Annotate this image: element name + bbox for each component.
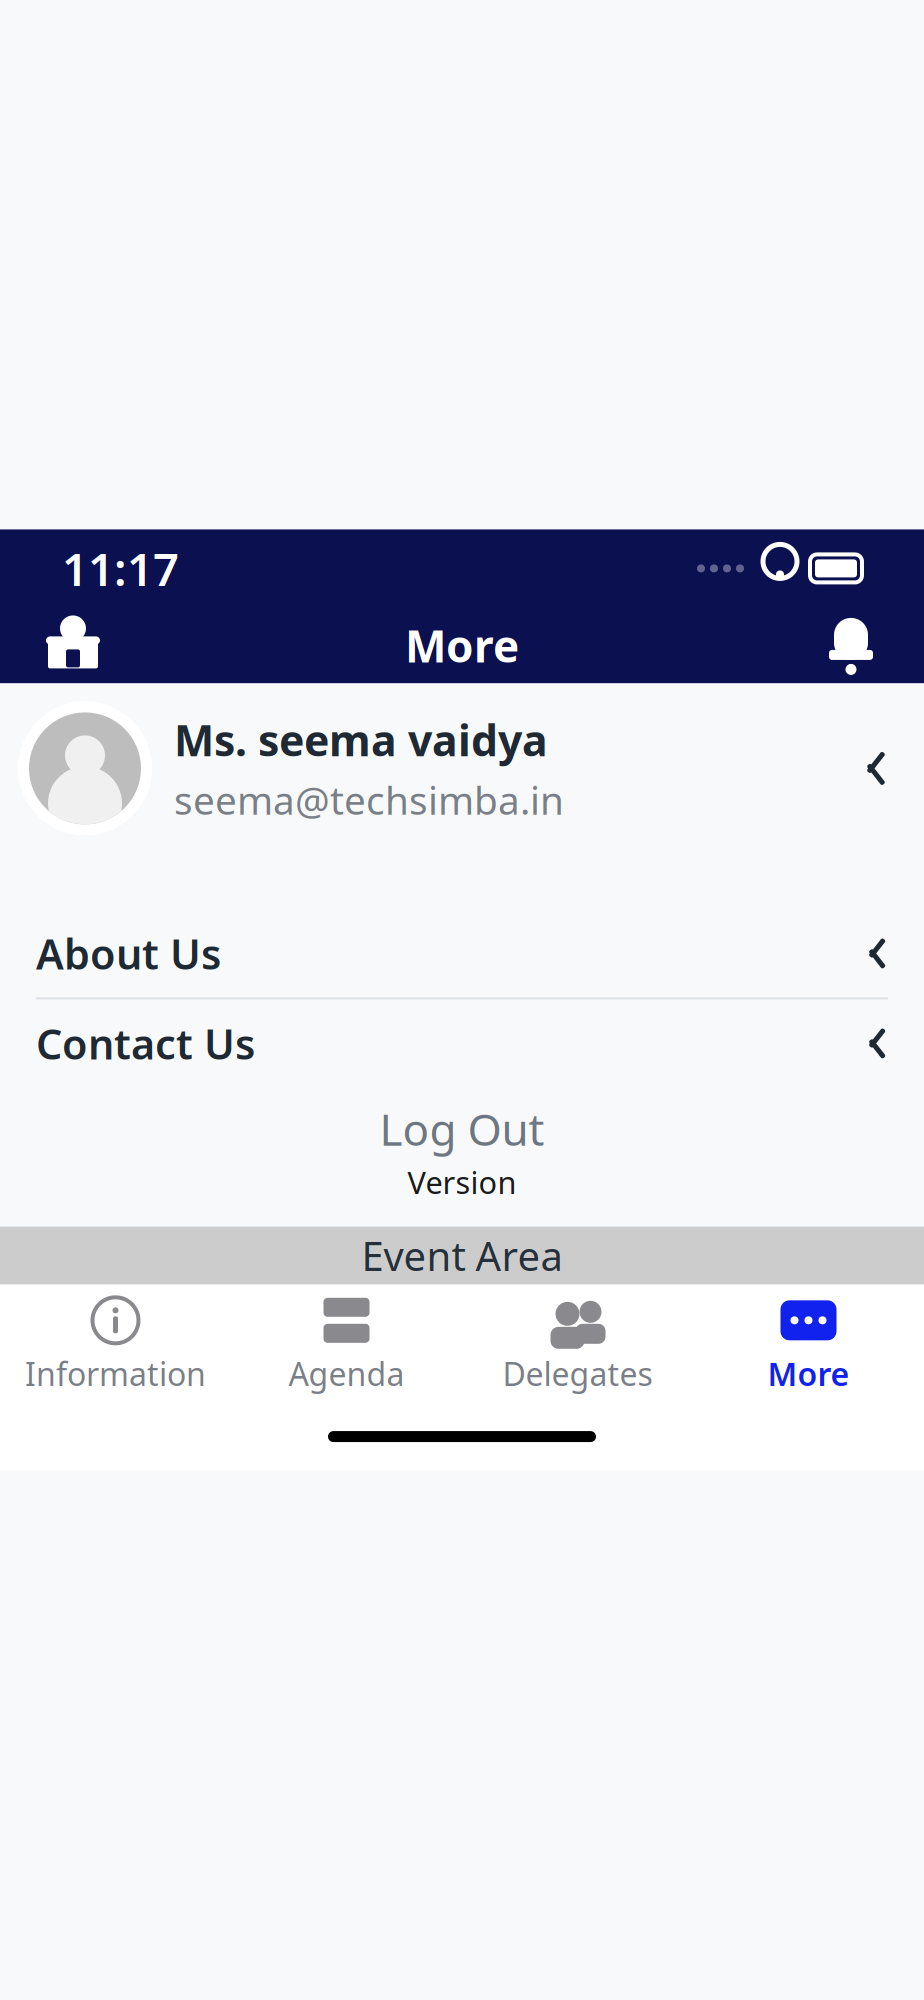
button[interactable]: About Us (0, 909, 924, 997)
button[interactable]: Agenda (231, 1282, 462, 1405)
staticText: More (767, 1352, 849, 1395)
staticText: Agenda (288, 1352, 404, 1395)
button[interactable]: Contact Us (0, 999, 924, 1087)
staticText: Information (25, 1352, 206, 1395)
staticText: More (405, 616, 519, 675)
staticText: 11:17 (62, 538, 179, 598)
staticText: Version (407, 1162, 516, 1203)
button[interactable]: More (693, 1282, 924, 1405)
button[interactable]: Information (0, 1282, 231, 1405)
button[interactable]: Log Out (0, 1095, 924, 1162)
staticText: seema@techsimba.in (174, 774, 564, 825)
staticText: Contact Us (36, 1016, 255, 1071)
staticText: Event Area (361, 1229, 562, 1282)
staticText: Delegates (502, 1352, 652, 1395)
button[interactable]: Delegates (462, 1282, 693, 1405)
staticText: About Us (36, 926, 221, 981)
button[interactable]: Home (36, 607, 110, 683)
staticText: Ms. seema vaidya (174, 711, 548, 768)
button[interactable]: Ms. seema vaidya (0, 683, 924, 853)
staticText: Log Out (379, 1099, 544, 1158)
button[interactable]: Notifications (814, 607, 888, 683)
